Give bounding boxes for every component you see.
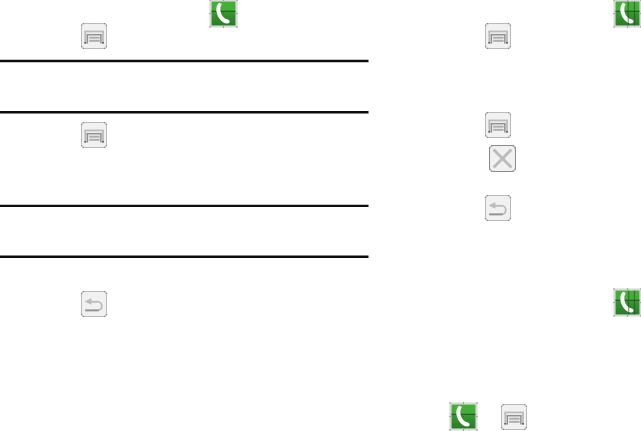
button[interactable]: Show keyboard xyxy=(81,122,107,148)
button[interactable]: Show keyboard xyxy=(485,23,511,49)
button[interactable]: Show keyboard xyxy=(81,23,107,49)
button[interactable]: Call xyxy=(614,0,641,27)
button[interactable]: Back xyxy=(81,291,107,317)
button[interactable]: Close xyxy=(489,145,516,172)
button[interactable]: Call xyxy=(450,403,477,430)
button[interactable]: Show keyboard xyxy=(501,404,527,430)
button[interactable]: Call xyxy=(614,289,641,316)
button[interactable]: Show keyboard xyxy=(485,112,511,138)
button[interactable]: Call xyxy=(210,0,237,27)
button[interactable]: Back xyxy=(485,195,511,221)
